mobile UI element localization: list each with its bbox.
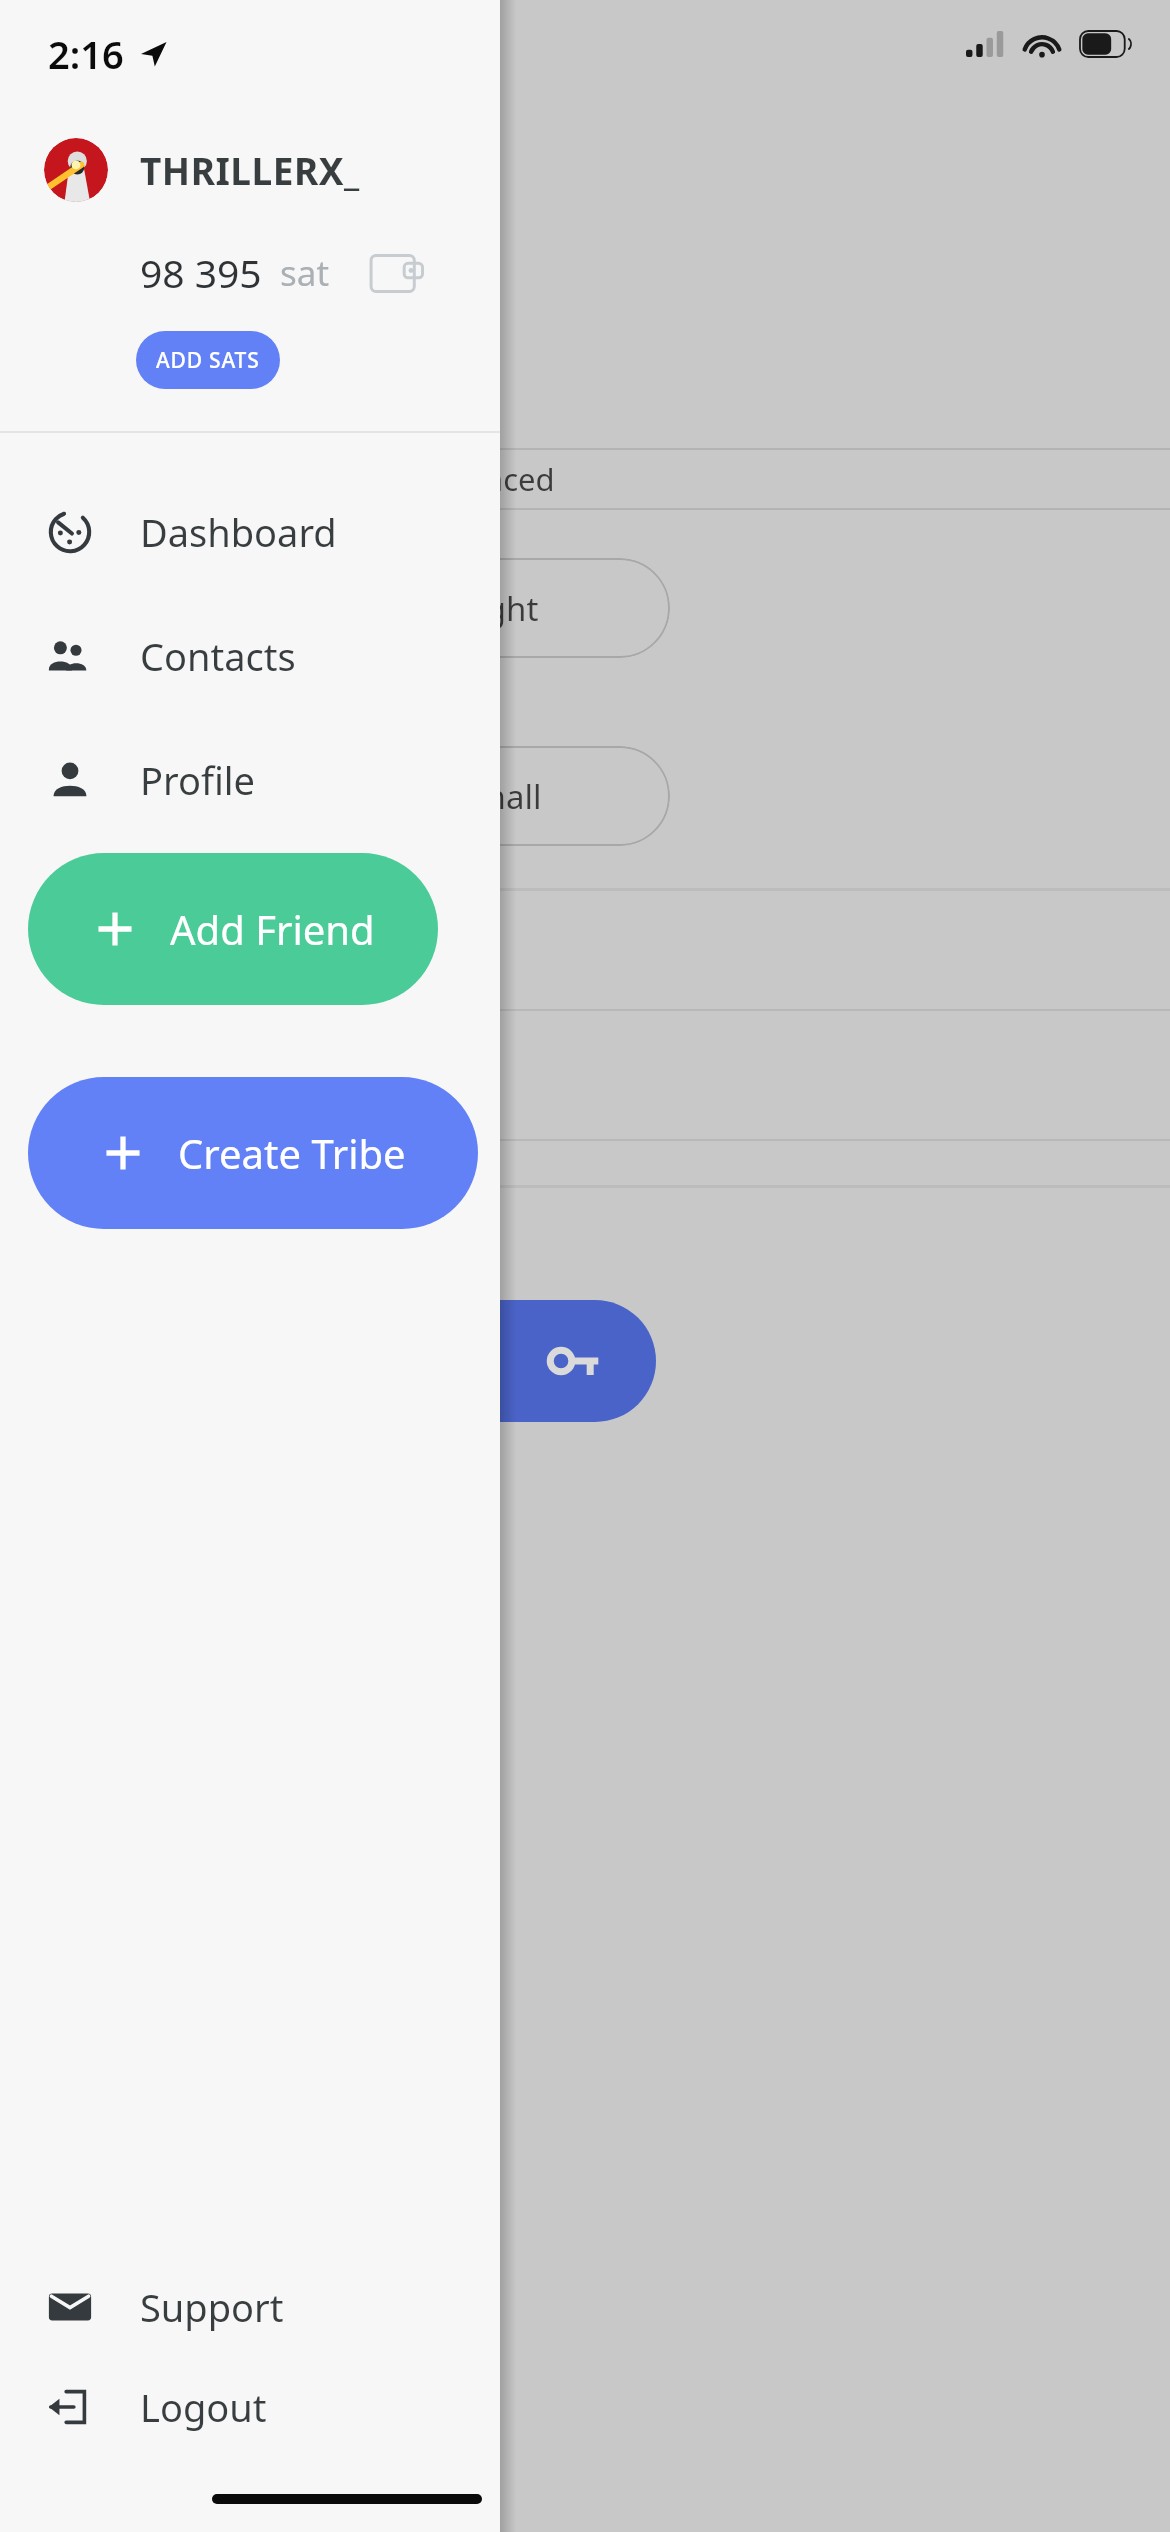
button[interactable]: Contacts xyxy=(0,619,500,693)
staticText: Logout xyxy=(140,2381,267,2433)
button[interactable]: Add Friend xyxy=(28,853,438,1005)
button[interactable]: Support xyxy=(0,2270,500,2344)
button[interactable]: Wallet xyxy=(370,251,424,295)
button[interactable]: Light xyxy=(328,558,670,658)
staticText: Advanced xyxy=(412,458,555,500)
staticText: Small xyxy=(457,774,542,819)
button[interactable]: Small xyxy=(328,746,670,846)
staticText: THRILLERX_ xyxy=(140,145,360,195)
button[interactable]: Dashboard xyxy=(0,495,500,569)
button[interactable]: Key xyxy=(408,1300,656,1422)
staticText: Profile xyxy=(140,754,256,806)
staticText: ADD SATS xyxy=(156,346,260,375)
staticText: Add Friend xyxy=(170,902,375,956)
staticText: Light xyxy=(460,586,539,631)
button[interactable]: Create Tribe xyxy=(28,1077,478,1229)
staticText: Create Tribe xyxy=(178,1126,406,1180)
button[interactable]: ADD SATS xyxy=(136,331,280,389)
staticText: Support xyxy=(140,2281,284,2333)
staticText: Dashboard xyxy=(140,506,337,558)
staticText: 98 395 xyxy=(140,246,262,299)
button[interactable]: Profile xyxy=(0,743,500,817)
staticText: sat xyxy=(280,249,330,297)
button[interactable]: Logout xyxy=(0,2370,500,2444)
staticText: Contacts xyxy=(140,630,296,682)
staticText: 2:16 xyxy=(48,28,124,80)
